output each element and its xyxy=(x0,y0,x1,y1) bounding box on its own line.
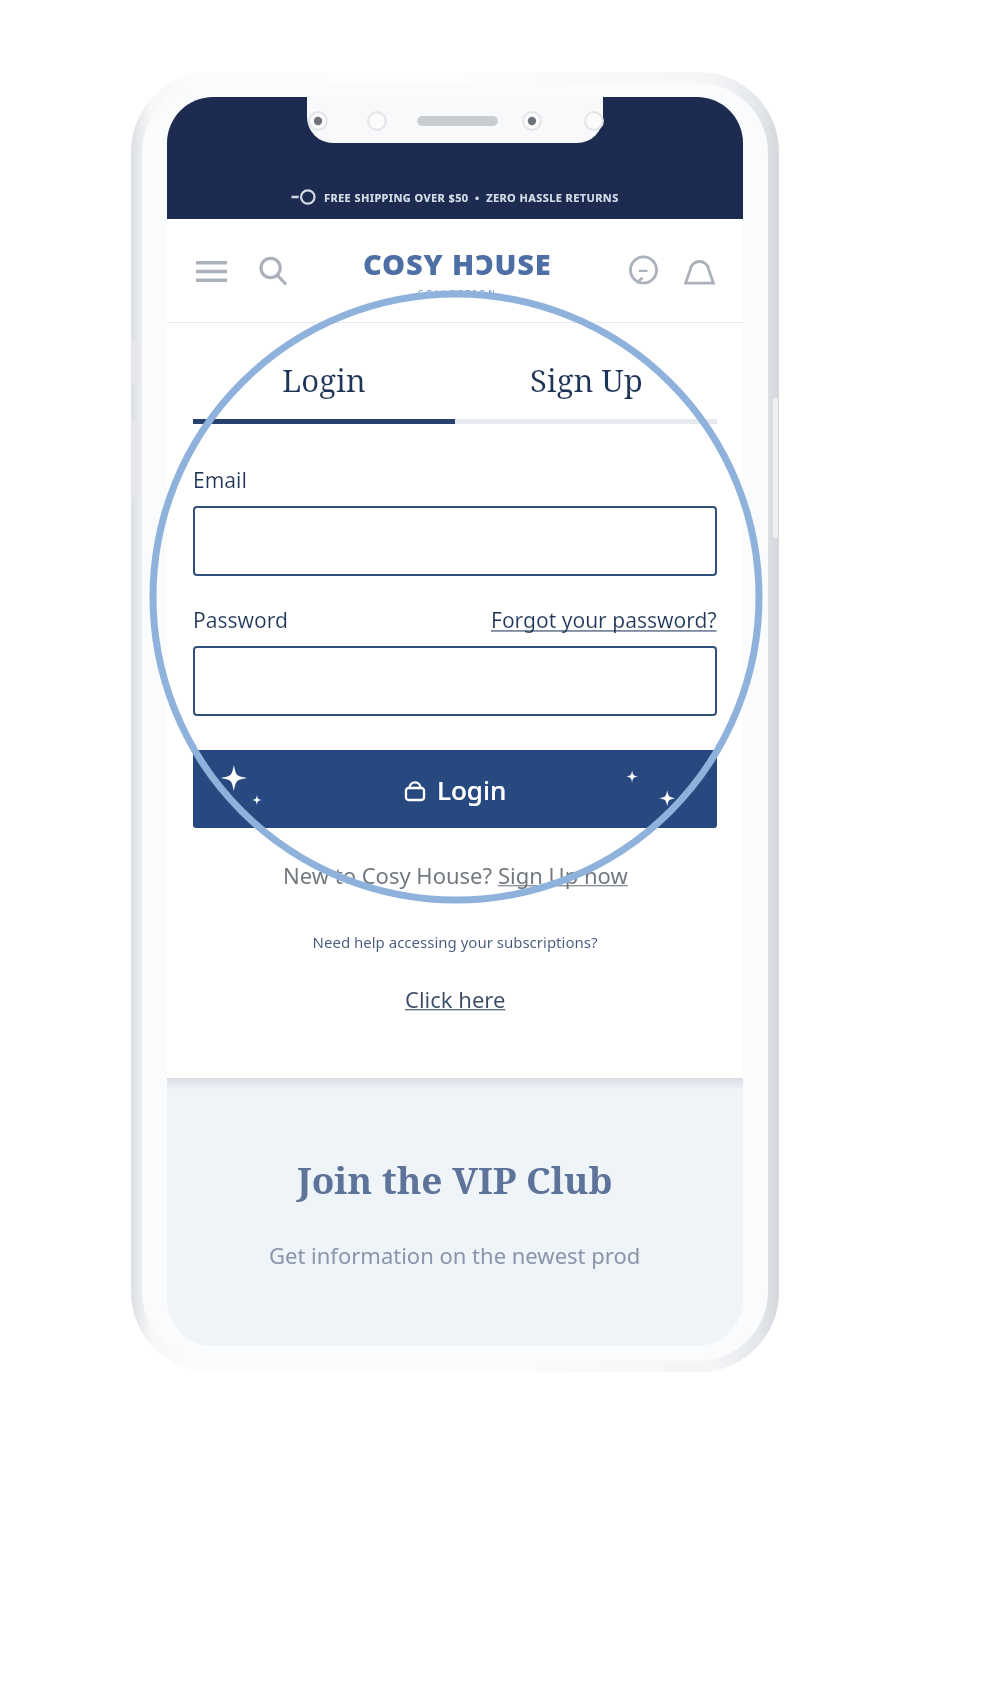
button[interactable] xyxy=(193,646,717,716)
staticText: Login xyxy=(437,772,507,807)
staticText: Sign Up xyxy=(530,359,643,401)
button[interactable]: Click here xyxy=(193,984,717,1014)
staticText: New to Cosy House? xyxy=(283,860,498,890)
staticText: Sign Up now xyxy=(498,860,628,890)
button[interactable]: Login xyxy=(193,750,717,828)
button[interactable]: Sign Up xyxy=(455,359,717,401)
staticText: FREE SHIPPING OVER $50 • ZERO HASSLE RET… xyxy=(324,190,619,205)
button[interactable]: Sign Up now xyxy=(498,860,628,890)
staticText: Login xyxy=(282,359,366,401)
staticText: Get information on the newest prod xyxy=(269,1240,641,1270)
staticText: Need help accessing your subscriptions? xyxy=(193,932,717,952)
button[interactable]: Login xyxy=(193,359,455,401)
staticText: Click here xyxy=(405,984,506,1014)
staticText: Password xyxy=(193,606,288,635)
staticText: Email xyxy=(193,466,247,495)
button[interactable]: Search xyxy=(249,247,297,295)
staticText: COSY HƆUSE xyxy=(363,244,552,283)
button[interactable]: Cart xyxy=(675,247,723,295)
button[interactable]: Menu xyxy=(187,247,235,295)
button[interactable] xyxy=(193,506,717,576)
button[interactable]: Chat xyxy=(619,247,667,295)
button[interactable]: Forgot your password? xyxy=(491,606,717,635)
staticText: Forgot your password? xyxy=(491,606,717,635)
staticText: COLLECTION xyxy=(418,287,498,298)
staticText: Join the VIP Club xyxy=(297,1154,613,1204)
